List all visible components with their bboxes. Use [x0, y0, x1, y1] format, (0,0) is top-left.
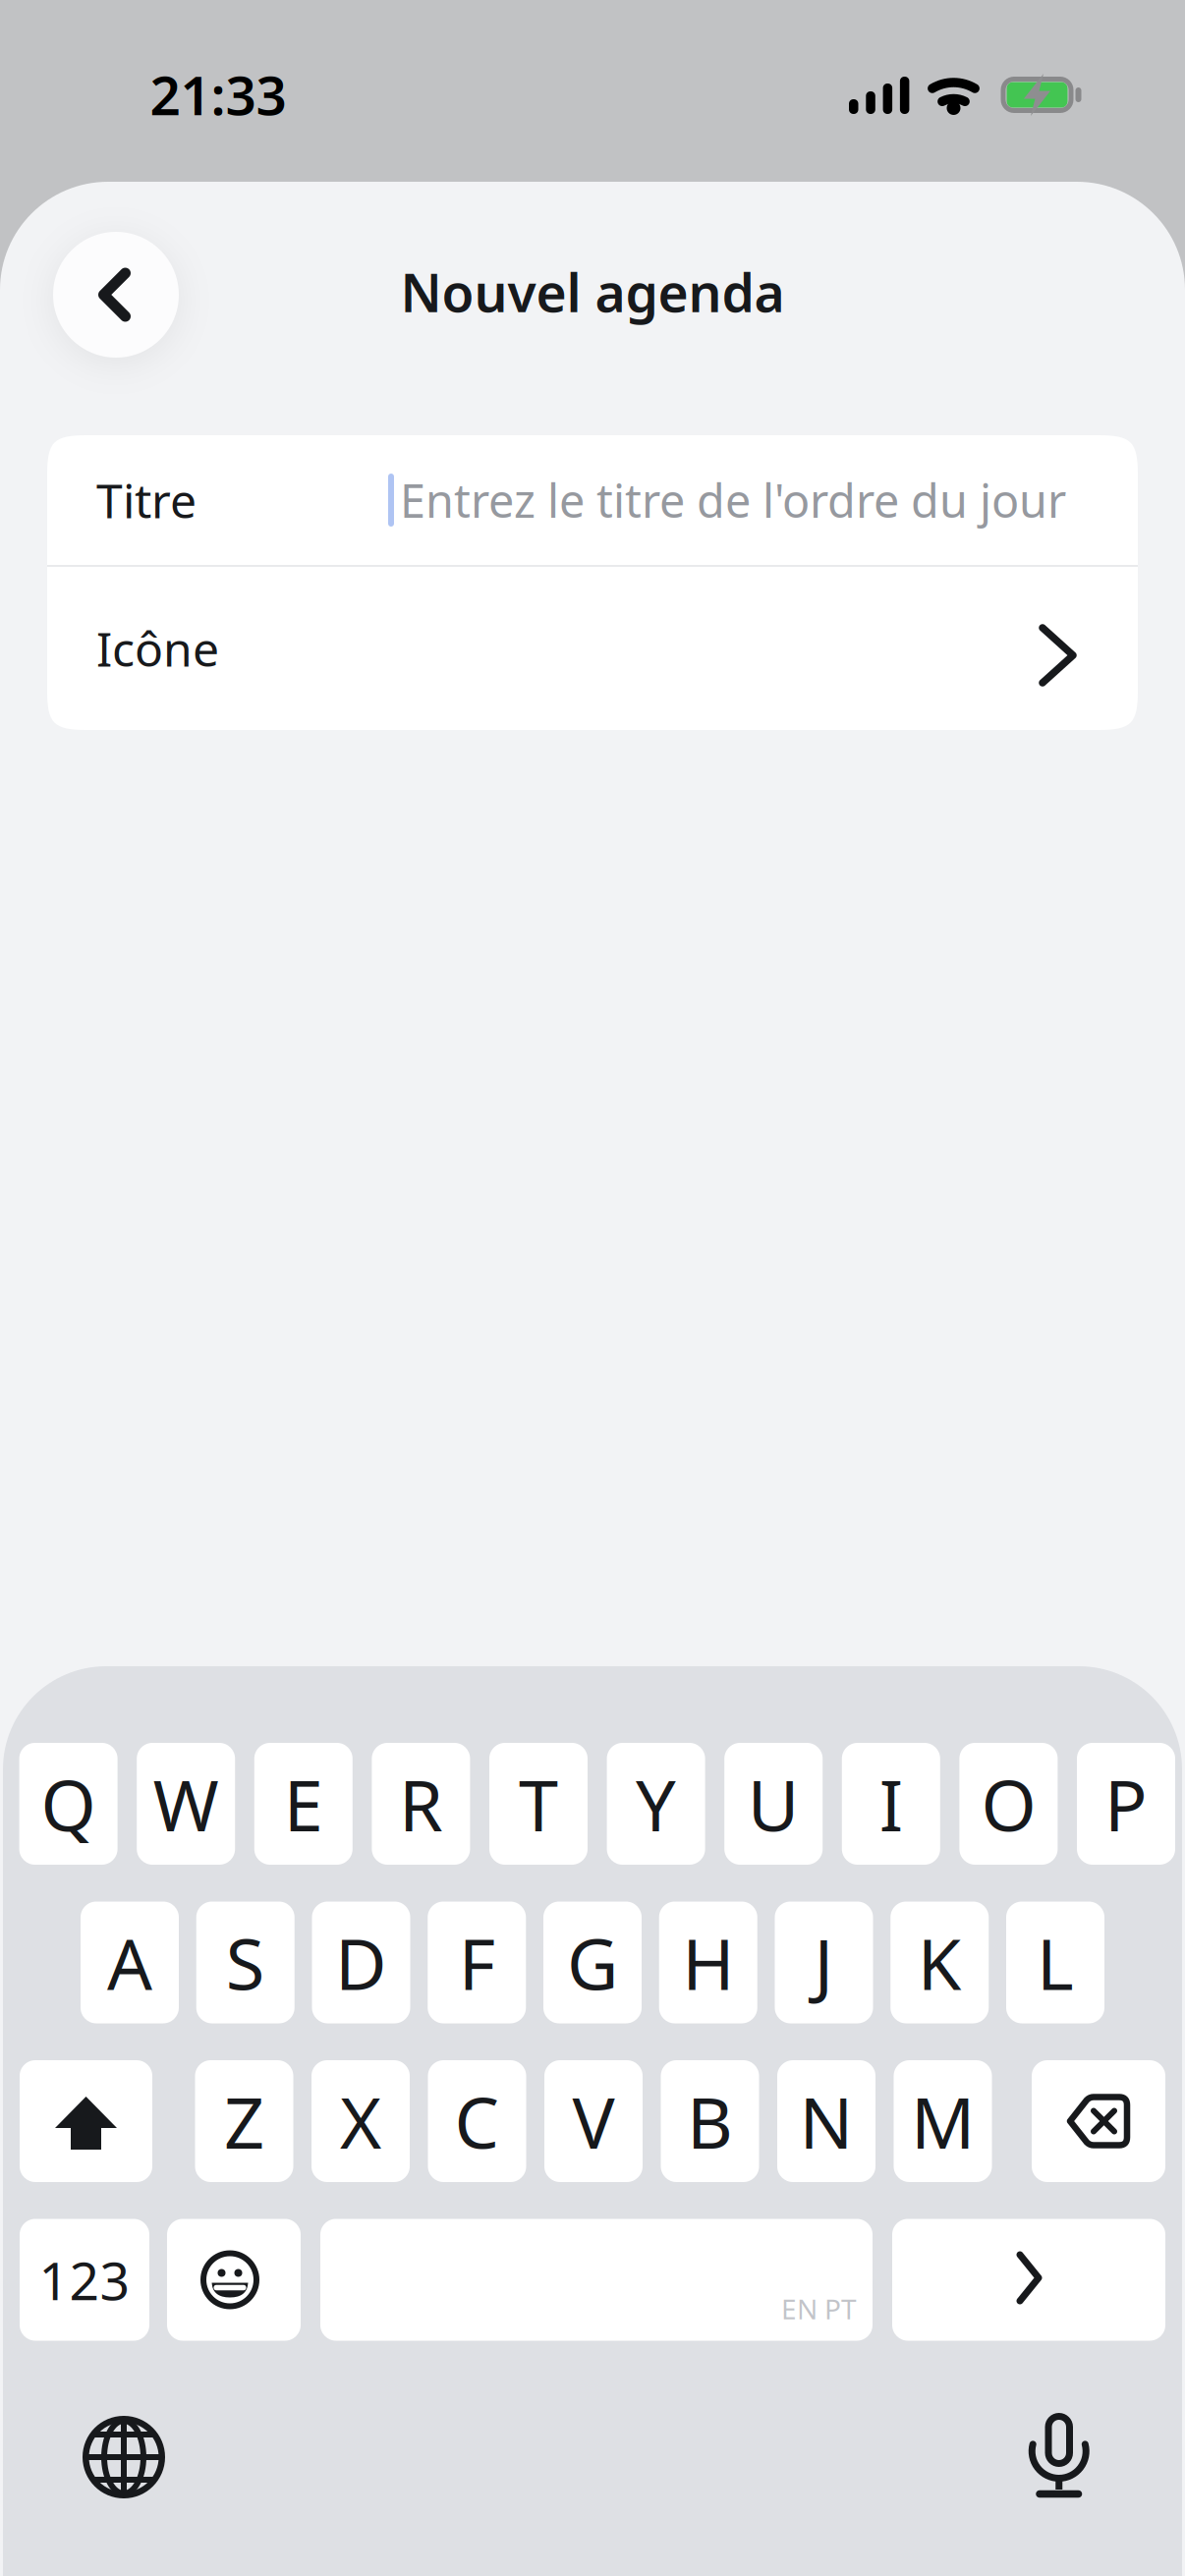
- staticText: Nouvel agenda: [400, 257, 785, 327]
- button[interactable]: Icône: [47, 567, 1138, 730]
- button[interactable]: R: [372, 1743, 470, 1865]
- staticText: 21:33: [150, 59, 286, 130]
- button[interactable]: Dictation: [1031, 2411, 1090, 2497]
- button[interactable]: Shift: [20, 2060, 152, 2182]
- button[interactable]: Titre: [47, 435, 1138, 565]
- button[interactable]: I: [842, 1743, 940, 1865]
- button[interactable]: Q: [19, 1743, 118, 1865]
- button[interactable]: Y: [607, 1743, 705, 1865]
- staticText: X: [340, 2074, 381, 2168]
- button[interactable]: A: [81, 1902, 179, 2023]
- staticText: P: [1104, 1757, 1148, 1851]
- staticText: O: [981, 1757, 1036, 1851]
- staticText: W: [153, 1757, 219, 1851]
- button[interactable]: G: [543, 1902, 642, 2023]
- staticText: D: [335, 1915, 387, 2009]
- button[interactable]: L: [1006, 1902, 1104, 2023]
- button[interactable]: K: [890, 1902, 989, 2023]
- staticText: Z: [224, 2074, 264, 2168]
- button[interactable]: O: [959, 1743, 1058, 1865]
- staticText: EN PT: [781, 2290, 857, 2327]
- staticText: Entrez le titre de l'ordre du jour: [400, 470, 1066, 531]
- button[interactable]: Return: [892, 2219, 1165, 2341]
- button[interactable]: N: [777, 2060, 875, 2182]
- button[interactable]: X: [311, 2060, 410, 2182]
- staticText: T: [519, 1757, 558, 1851]
- button[interactable]: M: [894, 2060, 992, 2182]
- button[interactable]: S: [196, 1902, 295, 2023]
- staticText: Y: [636, 1757, 676, 1851]
- staticText: Q: [41, 1757, 96, 1851]
- button[interactable]: Delete: [1032, 2060, 1165, 2182]
- staticText: Titre: [96, 469, 197, 531]
- button[interactable]: Space: [320, 2219, 873, 2341]
- staticText: Icône: [96, 617, 219, 680]
- button[interactable]: 123: [20, 2219, 149, 2341]
- staticText: G: [567, 1915, 618, 2009]
- staticText: M: [911, 2074, 975, 2168]
- button[interactable]: B: [661, 2060, 759, 2182]
- staticText: L: [1037, 1915, 1074, 2009]
- button[interactable]: P: [1077, 1743, 1175, 1865]
- staticText: N: [799, 2074, 853, 2168]
- staticText: 123: [39, 2245, 130, 2315]
- button[interactable]: W: [137, 1743, 235, 1865]
- button[interactable]: Z: [195, 2060, 293, 2182]
- button[interactable]: F: [428, 1902, 526, 2023]
- button[interactable]: V: [544, 2060, 643, 2182]
- staticText: H: [682, 1915, 734, 2009]
- staticText: K: [918, 1915, 962, 2009]
- button[interactable]: Back: [53, 232, 179, 358]
- staticText: I: [879, 1757, 903, 1851]
- button[interactable]: U: [724, 1743, 823, 1865]
- staticText: R: [399, 1757, 443, 1851]
- staticText: J: [814, 1915, 834, 2009]
- staticText: C: [454, 2074, 500, 2168]
- staticText: S: [226, 1915, 265, 2009]
- button[interactable]: E: [254, 1743, 353, 1865]
- staticText: F: [459, 1915, 495, 2009]
- staticText: A: [107, 1915, 152, 2009]
- button[interactable]: T: [489, 1743, 588, 1865]
- button[interactable]: C: [428, 2060, 526, 2182]
- staticText: B: [687, 2074, 733, 2168]
- button[interactable]: J: [775, 1902, 873, 2023]
- staticText: V: [572, 2074, 615, 2168]
- staticText: U: [747, 1757, 800, 1851]
- button[interactable]: Emoji: [167, 2219, 301, 2341]
- button[interactable]: D: [312, 1902, 410, 2023]
- staticText: E: [284, 1757, 323, 1851]
- button[interactable]: Next keyboard: [83, 2416, 165, 2498]
- button[interactable]: H: [659, 1902, 757, 2023]
